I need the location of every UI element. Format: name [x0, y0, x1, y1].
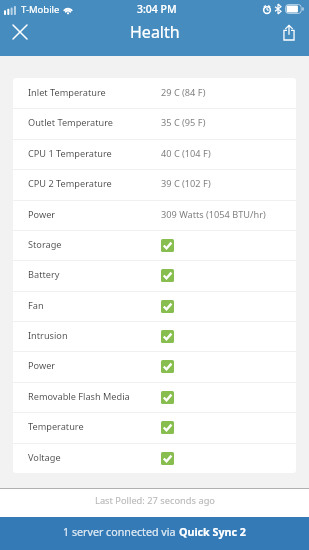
button[interactable]: 1 server connected via [0, 517, 309, 550]
button[interactable]: Storage [13, 230, 296, 260]
button[interactable]: Intrusion [13, 321, 296, 351]
staticText: Storage [28, 238, 62, 251]
staticText: Last Polled: 27 seconds ago [95, 494, 215, 507]
staticText: Voltage [28, 451, 61, 464]
staticText: 40 C (104 F) [161, 147, 211, 160]
button[interactable]: Inlet Temperature [13, 78, 296, 108]
button[interactable]: Outlet Temperature [13, 108, 296, 139]
staticText: 39 C (102 F) [161, 177, 211, 190]
staticText: 29 C (84 F) [161, 86, 206, 99]
staticText: CPU 2 Temperature [28, 177, 112, 190]
staticText: 35 C (95 F) [161, 116, 206, 129]
button[interactable]: Fan [13, 291, 296, 321]
button[interactable]: Battery [13, 260, 296, 291]
staticText: Fan [28, 299, 44, 312]
button[interactable]: Power [13, 200, 296, 230]
staticText: Removable Flash Media [28, 390, 130, 403]
button[interactable]: Voltage [13, 443, 296, 473]
button[interactable]: Power [13, 351, 296, 382]
button[interactable]: CPU 1 Temperature [13, 139, 296, 169]
staticText: 3:04 PM [137, 2, 177, 16]
staticText: Intrusion [28, 329, 68, 342]
staticText: Power [28, 208, 56, 221]
staticText: T-Mobile [21, 3, 60, 16]
button[interactable]: Temperature [13, 412, 296, 443]
staticText: 309 Watts (1054 BTU/hr) [161, 208, 266, 221]
button[interactable]: Removable Flash Media [13, 382, 296, 412]
staticText: Outlet Temperature [28, 116, 114, 129]
button[interactable]: Close [0, 15, 40, 49]
staticText: Battery [28, 268, 60, 281]
staticText: CPU 1 Temperature [28, 147, 112, 160]
staticText: 1 server connected via [63, 525, 179, 540]
staticText: Temperature [28, 420, 84, 433]
button[interactable]: Share [269, 15, 309, 49]
button[interactable]: CPU 2 Temperature [13, 169, 296, 200]
staticText: Quick Sync 2 [179, 525, 246, 540]
staticText: Health [130, 21, 180, 43]
staticText: Inlet Temperature [28, 86, 106, 99]
staticText: Power [28, 359, 56, 372]
